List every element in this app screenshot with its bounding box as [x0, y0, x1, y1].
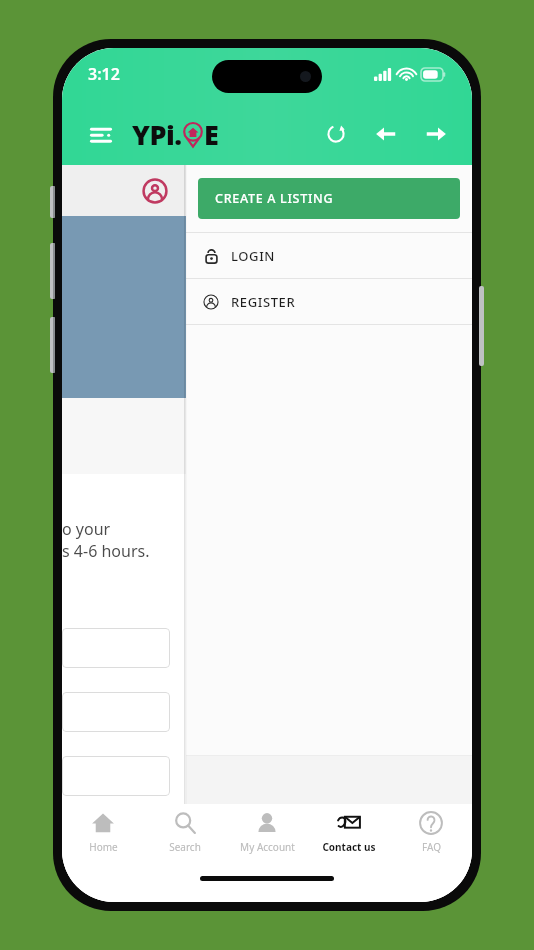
button[interactable]: Account [142, 178, 168, 204]
button[interactable] [62, 628, 170, 668]
staticText: REGISTER [231, 293, 296, 311]
button[interactable]: REGISTER [186, 279, 472, 324]
staticText: LOGIN [231, 247, 276, 265]
button[interactable]: Contact us [308, 810, 390, 876]
button[interactable]: Home [62, 810, 144, 876]
button[interactable] [62, 692, 170, 732]
button[interactable] [62, 756, 170, 796]
staticText: s 4-6 hours. [62, 540, 150, 562]
button[interactable]: Menu [82, 115, 120, 153]
button[interactable]: Back [368, 116, 404, 152]
staticText: E [204, 116, 219, 153]
button[interactable]: My Account [226, 810, 308, 876]
button[interactable]: LOGIN [186, 233, 472, 278]
staticText: 3:12 [88, 63, 120, 85]
button[interactable]: Forward [418, 116, 454, 152]
staticText: YPi. [132, 116, 182, 153]
button[interactable]: Refresh [318, 116, 354, 152]
staticText: Contact us [322, 840, 376, 854]
button[interactable]: FAQ [390, 810, 472, 876]
button[interactable]: Search [144, 810, 226, 876]
staticText: Home [89, 840, 118, 854]
staticText: Search [169, 840, 201, 854]
staticText: o your [62, 518, 111, 540]
staticText: CREATE A LISTING [215, 190, 334, 207]
button[interactable]: CREATE A LISTING [198, 178, 460, 219]
staticText: My Account [240, 840, 295, 854]
staticText: FAQ [422, 840, 441, 854]
